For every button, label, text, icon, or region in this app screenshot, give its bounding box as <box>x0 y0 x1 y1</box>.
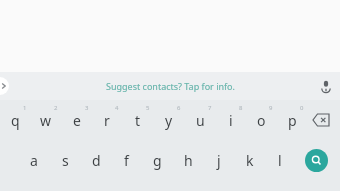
staticText: i <box>229 111 233 130</box>
button[interactable]: Expand suggestions <box>0 77 9 95</box>
button[interactable]: Voice input <box>312 72 340 100</box>
button[interactable]: t <box>123 100 153 140</box>
staticText: g <box>153 151 162 170</box>
button[interactable]: r <box>92 100 122 140</box>
button[interactable]: j <box>204 140 234 180</box>
staticText: 3 <box>85 104 89 112</box>
button[interactable]: y <box>154 100 184 140</box>
staticText: Suggest contacts? Tap for info. <box>106 80 235 92</box>
staticText: 0 <box>300 104 304 112</box>
staticText: 9 <box>269 104 273 112</box>
staticText: e <box>73 111 81 130</box>
staticText: 1 <box>23 104 27 112</box>
button[interactable]: q <box>0 100 30 140</box>
staticText: 5 <box>146 104 150 112</box>
staticText: f <box>124 151 129 170</box>
staticText: t <box>135 111 141 130</box>
staticText: p <box>288 111 297 130</box>
staticText: q <box>11 111 20 130</box>
staticText: u <box>196 111 205 130</box>
button[interactable]: f <box>111 140 141 180</box>
button[interactable]: Backspace <box>302 100 340 140</box>
staticText: h <box>184 151 193 170</box>
staticText: j <box>217 151 221 170</box>
staticText: 8 <box>239 104 243 112</box>
staticText: y <box>165 111 173 130</box>
button[interactable]: g <box>142 140 172 180</box>
staticText: a <box>30 151 38 170</box>
staticText: k <box>246 151 254 170</box>
staticText: 6 <box>177 104 181 112</box>
button[interactable]: k <box>235 140 265 180</box>
button[interactable]: a <box>19 140 49 180</box>
staticText: s <box>62 151 69 170</box>
staticText: l <box>278 151 282 170</box>
button[interactable]: Suggest contacts? Tap for info. <box>0 72 340 100</box>
staticText: r <box>104 111 110 130</box>
button[interactable]: l <box>265 140 295 180</box>
staticText: 2 <box>54 104 58 112</box>
staticText: d <box>92 151 101 170</box>
button[interactable]: u <box>185 100 215 140</box>
button[interactable]: o <box>246 100 276 140</box>
staticText: 4 <box>115 104 119 112</box>
button[interactable]: Search <box>305 149 328 172</box>
button[interactable]: p <box>277 100 307 140</box>
staticText: o <box>257 111 266 130</box>
staticText: 7 <box>208 104 212 112</box>
button[interactable]: d <box>81 140 111 180</box>
button[interactable]: i <box>216 100 246 140</box>
staticText: w <box>40 111 52 130</box>
button[interactable]: s <box>50 140 80 180</box>
button[interactable]: h <box>173 140 203 180</box>
button[interactable]: e <box>62 100 92 140</box>
button[interactable]: w <box>31 100 61 140</box>
